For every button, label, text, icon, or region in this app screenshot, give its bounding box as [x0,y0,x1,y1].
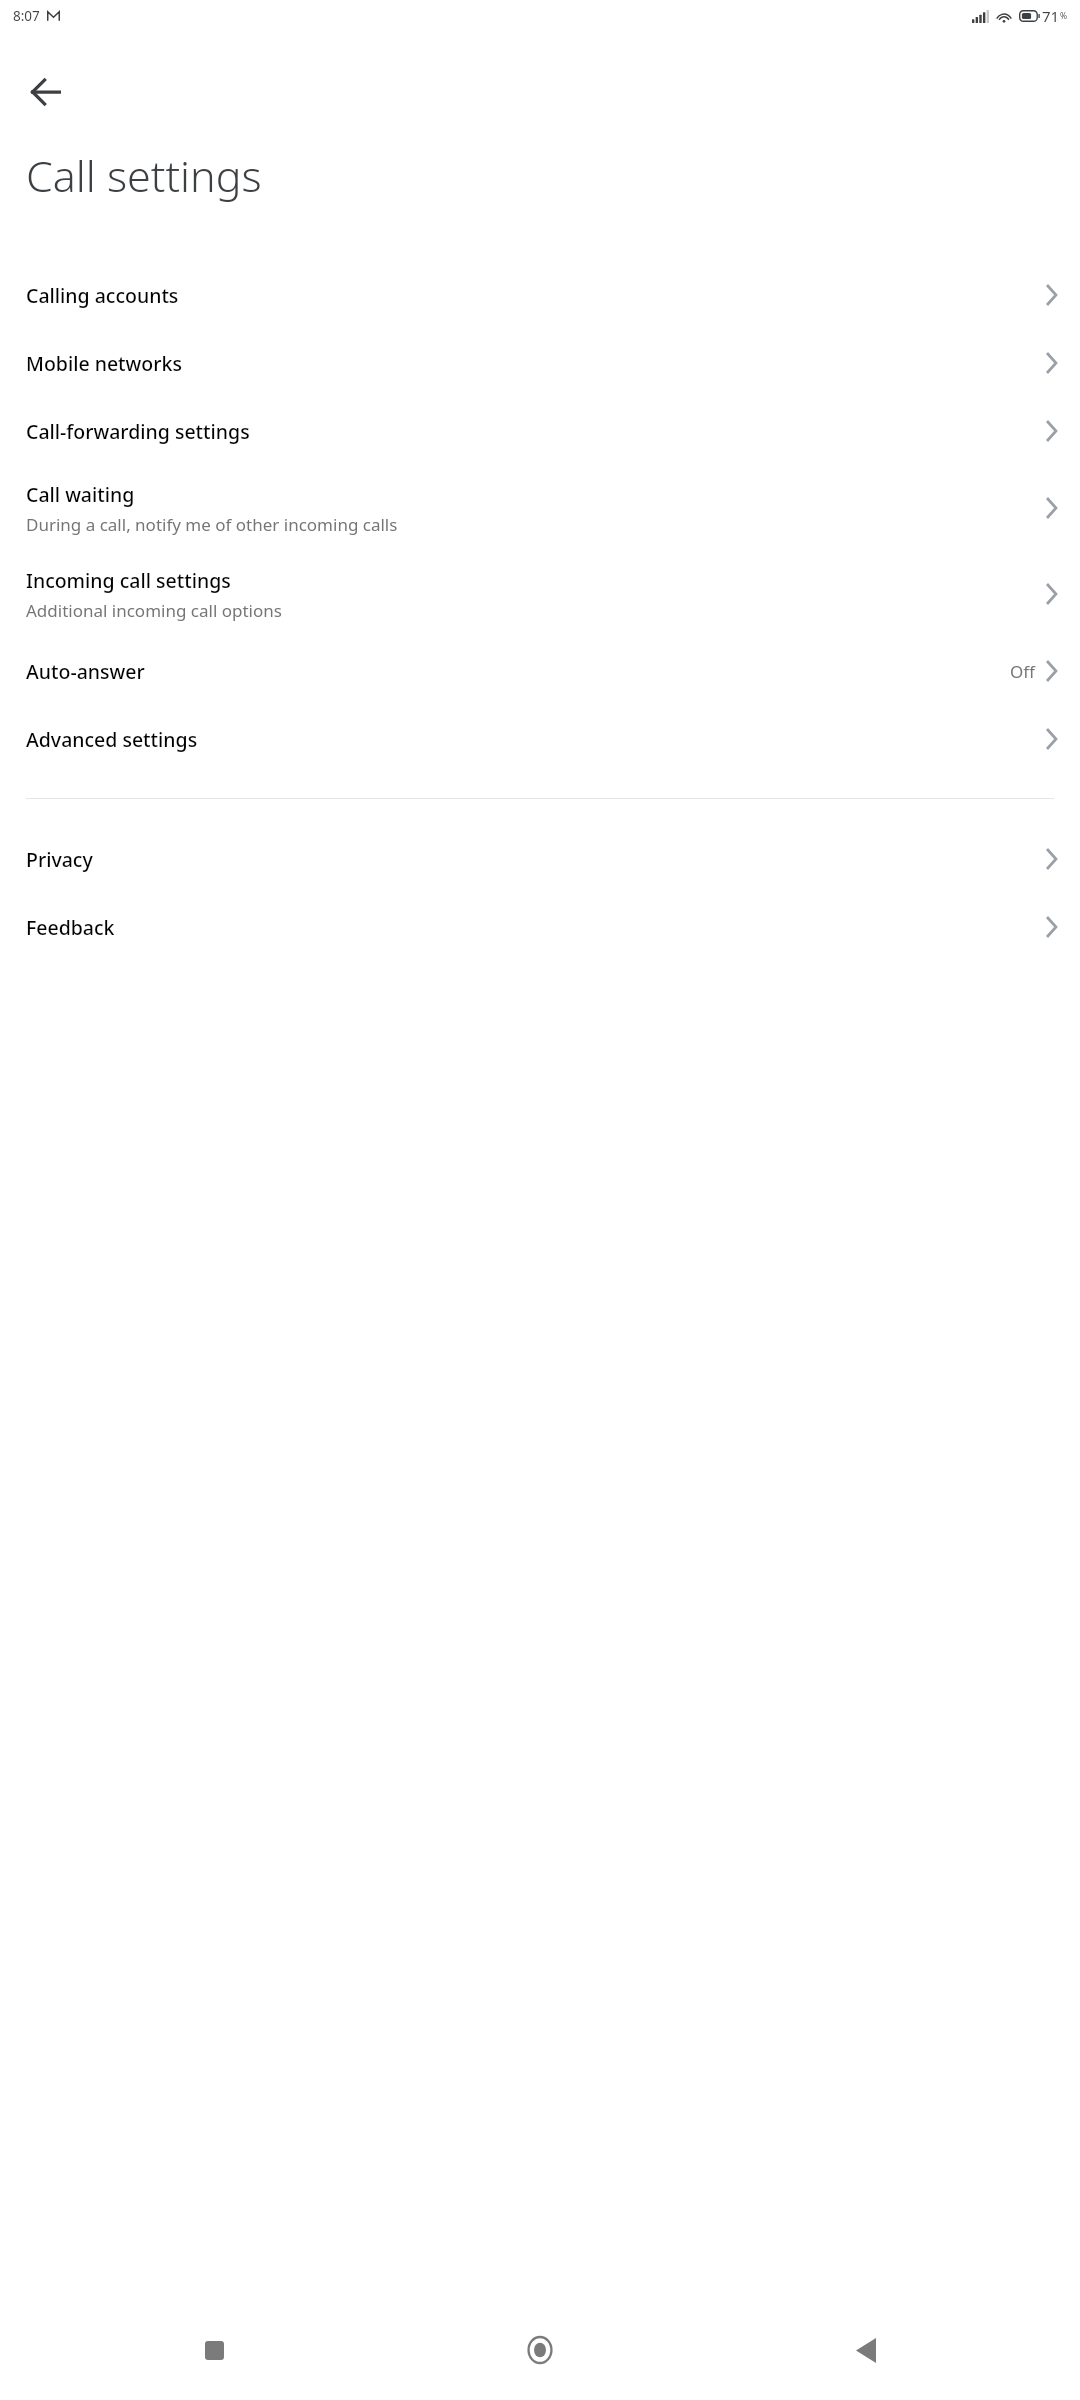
button[interactable]: Mobile networks [0,329,1080,397]
button[interactable]: Home [512,2322,568,2378]
staticText: Feedback [26,914,115,941]
staticText: Off [1010,660,1035,683]
staticText: Advanced settings [26,726,198,753]
staticText: Incoming call settings [26,567,231,594]
button[interactable]: Calling accounts [0,261,1080,329]
button[interactable]: Call waiting [0,465,1080,551]
button[interactable]: Privacy [0,825,1080,893]
button[interactable]: Advanced settings [0,705,1080,773]
staticText: % [1060,10,1068,22]
staticText: Calling accounts [26,282,179,309]
button[interactable]: Recent apps [186,2322,242,2378]
button[interactable]: Feedback [0,893,1080,961]
staticText: Call waiting [26,481,135,508]
staticText: Additional incoming call options [26,599,282,622]
button[interactable]: Call-forwarding settings [0,397,1080,465]
staticText: Auto-answer [26,658,145,685]
staticText: 71 [1042,6,1060,26]
staticText: Call-forwarding settings [26,418,250,445]
staticText: Call settings [26,146,262,205]
staticText: Privacy [26,846,93,873]
staticText: 8:07 [13,7,40,25]
button[interactable]: Back [10,56,82,128]
staticText: During a call, notify me of other incomi… [26,513,398,536]
button[interactable]: Back [838,2322,894,2378]
button[interactable]: Incoming call settings [0,551,1080,637]
staticText: Mobile networks [26,350,182,377]
button[interactable]: Auto-answer [0,637,1080,705]
